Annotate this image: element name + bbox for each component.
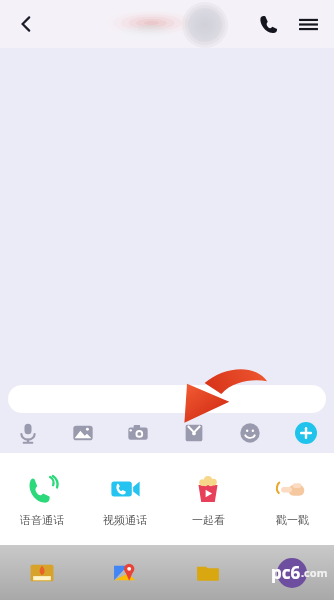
button[interactable]: Watermark — [272, 553, 312, 593]
button[interactable]: Message input — [8, 385, 326, 413]
button[interactable]: Location — [105, 553, 145, 593]
button[interactable]: Profile — [182, 2, 228, 48]
staticText: pc6 — [271, 561, 301, 584]
button[interactable]: 语音通话 — [0, 453, 83, 545]
button[interactable]: Red packet — [174, 413, 214, 453]
staticText: 语音通话 — [20, 513, 64, 527]
button[interactable]: Files — [188, 553, 228, 593]
button[interactable]: 视频通话 — [83, 453, 166, 545]
staticText: 戳一戳 — [276, 513, 309, 527]
button[interactable]: Camera — [118, 413, 158, 453]
button[interactable]: Photo — [63, 413, 103, 453]
button[interactable]: Back — [4, 2, 48, 46]
staticText: 一起看 — [192, 513, 225, 527]
staticText: .com — [301, 565, 328, 580]
button[interactable]: Voice message — [8, 413, 48, 453]
button[interactable]: Menu — [288, 4, 328, 44]
button[interactable]: 一起看 — [166, 453, 250, 545]
button[interactable]: Call — [248, 4, 288, 44]
staticText: 视频通话 — [103, 513, 147, 527]
button[interactable]: GIF — [22, 553, 62, 593]
button[interactable]: Emoji — [230, 413, 270, 453]
button[interactable]: 戳一戳 — [250, 453, 334, 545]
button[interactable]: More — [286, 413, 326, 453]
